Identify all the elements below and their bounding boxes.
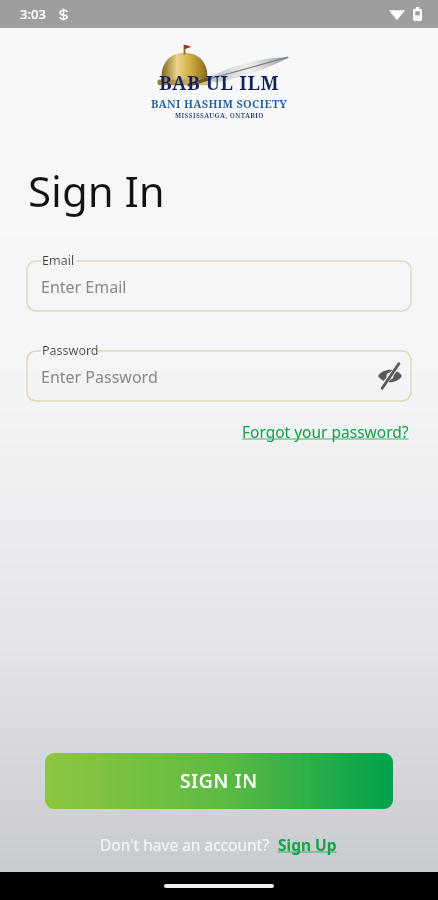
staticText: Email [42,252,75,269]
button[interactable]: Forgot your password? [240,417,411,446]
staticText: Enter Password [41,366,158,388]
staticText: BAB UL ILM [159,70,280,96]
staticText: Forgot your password? [242,421,409,442]
staticText: 3:03 [20,5,46,23]
staticText: Don't have an account? [100,834,269,855]
staticText: Sign In [28,162,165,219]
staticText: Password [42,342,99,359]
button[interactable]: SIGN IN [45,753,393,809]
staticText: SIGN IN [180,768,258,794]
button[interactable]: Sign Up [277,831,338,858]
staticText: BANI HASHIM SOCIETY [151,96,288,111]
staticText: Enter Email [41,276,127,298]
staticText: MISSISSAUGA, ONTARIO [175,111,264,120]
staticText: Sign Up [278,834,337,855]
button[interactable]: Toggle password visibility [369,355,411,397]
